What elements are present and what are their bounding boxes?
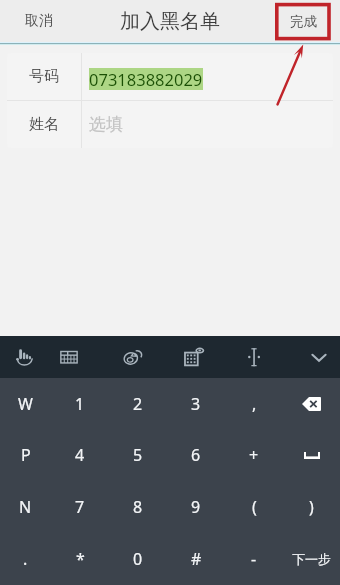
button[interactable]: 6: [167, 429, 225, 481]
button[interactable]: Emoticons: [112, 336, 154, 378]
staticText: 5: [133, 444, 143, 466]
staticText: 选填: [89, 114, 123, 135]
button[interactable]: (: [225, 481, 283, 533]
staticText: 号码: [29, 67, 59, 86]
staticText: 073183882029: [89, 68, 203, 90]
staticText: 姓名: [29, 115, 59, 134]
button[interactable]: Backspace: [283, 378, 340, 429]
button[interactable]: W: [0, 378, 51, 429]
button[interactable]: Move cursor: [233, 336, 275, 378]
button[interactable]: ,: [225, 378, 283, 429]
button[interactable]: N: [0, 481, 51, 533]
staticText: +: [249, 444, 259, 466]
staticText: #: [191, 548, 202, 570]
button[interactable]: Space: [283, 429, 340, 481]
staticText: .: [23, 548, 28, 570]
staticText: 2: [133, 393, 143, 415]
staticText: 完成: [290, 13, 317, 30]
button[interactable]: Handwriting input: [3, 336, 45, 378]
staticText: 0: [133, 548, 143, 570]
staticText: ,: [252, 393, 257, 415]
staticText: 加入黑名单: [120, 9, 220, 34]
staticText: 8: [133, 496, 143, 518]
staticText: 4: [75, 444, 85, 466]
button[interactable]: -: [225, 533, 283, 585]
button[interactable]: 号码: [7, 53, 333, 100]
staticText: W: [18, 393, 33, 415]
button[interactable]: 取消: [17, 3, 61, 39]
button[interactable]: *: [51, 533, 109, 585]
button[interactable]: 8: [109, 481, 167, 533]
staticText: -: [251, 548, 257, 570]
button[interactable]: +: [225, 429, 283, 481]
button[interactable]: P: [0, 429, 51, 481]
button[interactable]: Keyboard layout: [48, 336, 90, 378]
staticText: (: [252, 496, 257, 518]
button[interactable]: 0: [109, 533, 167, 585]
button[interactable]: 5: [109, 429, 167, 481]
button[interactable]: 2: [109, 378, 167, 429]
button[interactable]: Symbols: [173, 336, 215, 378]
staticText: 7: [75, 496, 85, 518]
button[interactable]: 3: [167, 378, 225, 429]
button[interactable]: ): [283, 481, 340, 533]
staticText: ): [309, 496, 314, 518]
button[interactable]: #: [167, 533, 225, 585]
staticText: 下一步: [292, 551, 331, 567]
staticText: *: [76, 548, 85, 570]
button[interactable]: Hide keyboard: [298, 336, 340, 378]
staticText: 9: [191, 496, 201, 518]
button[interactable]: 下一步: [283, 533, 340, 585]
staticText: P: [21, 444, 31, 466]
staticText: 6: [191, 444, 201, 466]
button[interactable]: 4: [51, 429, 109, 481]
button[interactable]: 9: [167, 481, 225, 533]
button[interactable]: 完成: [282, 4, 325, 39]
staticText: N: [19, 496, 32, 518]
staticText: 1: [75, 393, 85, 415]
button[interactable]: 1: [51, 378, 109, 429]
staticText: 3: [191, 393, 201, 415]
staticText: 取消: [25, 12, 53, 30]
button[interactable]: 7: [51, 481, 109, 533]
button[interactable]: .: [0, 533, 51, 585]
button[interactable]: 姓名: [7, 101, 333, 148]
